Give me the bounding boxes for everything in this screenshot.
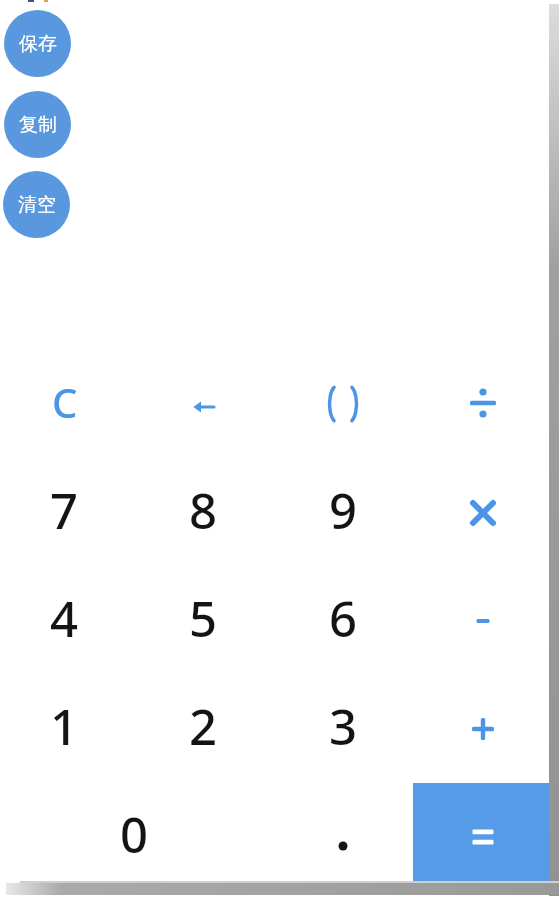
staticText: 0 bbox=[120, 801, 149, 868]
button[interactable] bbox=[413, 675, 553, 783]
button[interactable]: 6 bbox=[273, 567, 413, 675]
button[interactable]: 0 bbox=[0, 783, 273, 891]
button[interactable] bbox=[273, 783, 413, 891]
button[interactable]: 8 bbox=[134, 459, 273, 567]
staticText: 3 bbox=[329, 693, 358, 760]
button[interactable]: 2 bbox=[134, 675, 273, 783]
button[interactable]: 4 bbox=[0, 567, 134, 675]
button[interactable] bbox=[273, 351, 413, 459]
staticText: C bbox=[52, 375, 78, 429]
staticText: 7 bbox=[50, 477, 79, 544]
button[interactable]: C bbox=[0, 351, 134, 459]
staticText: 4 bbox=[50, 585, 79, 652]
button[interactable]: 7 bbox=[0, 459, 134, 567]
button[interactable]: 保存 bbox=[4, 10, 71, 77]
button[interactable] bbox=[413, 351, 553, 459]
staticText: 1 bbox=[50, 693, 79, 760]
button[interactable] bbox=[413, 459, 553, 567]
staticText: 清空 bbox=[18, 193, 56, 217]
staticText: 8 bbox=[189, 477, 218, 544]
button[interactable]: 9 bbox=[273, 459, 413, 567]
staticText: 9 bbox=[329, 477, 358, 544]
button[interactable] bbox=[134, 351, 273, 459]
button[interactable]: 5 bbox=[134, 567, 273, 675]
staticText: 2 bbox=[189, 693, 218, 760]
button[interactable] bbox=[413, 567, 553, 675]
staticText: 5 bbox=[189, 585, 218, 652]
button[interactable] bbox=[413, 783, 553, 891]
button[interactable]: 1 bbox=[0, 675, 134, 783]
button[interactable]: 3 bbox=[273, 675, 413, 783]
staticText: 6 bbox=[329, 585, 358, 652]
staticText: 复制 bbox=[19, 113, 57, 137]
staticText: 保存 bbox=[19, 32, 57, 56]
button[interactable]: 清空 bbox=[3, 171, 70, 238]
button[interactable]: 复制 bbox=[4, 91, 71, 158]
